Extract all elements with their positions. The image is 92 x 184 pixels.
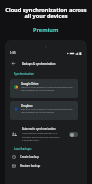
staticText: Local backups — [14, 147, 32, 151]
button[interactable]: Automatic synchronization — [10, 127, 78, 141]
staticText: Synchronization — [14, 72, 34, 76]
staticText: 1:35 — [10, 51, 16, 55]
button[interactable]: Dropbox — [10, 101, 78, 120]
staticText: Sign in to your account to start synchro… — [21, 86, 73, 92]
staticText: Backups & synchronization — [22, 62, 56, 66]
button[interactable]: Back — [10, 60, 17, 67]
staticText: Create backup — [20, 155, 39, 159]
staticText: Sign in to your account to start synchro… — [21, 108, 73, 114]
button[interactable]: Google Drive — [10, 79, 78, 98]
staticText: Restore backup — [20, 164, 41, 168]
staticText: Automatic synchronization — [22, 127, 56, 131]
button[interactable]: Restore backup — [10, 164, 78, 168]
staticText: Cloud synchronization across all your de… — [5, 6, 87, 20]
button[interactable]: Create backup — [10, 155, 78, 159]
staticText: Google Drive — [21, 82, 39, 86]
staticText: Premium — [33, 26, 59, 34]
staticText: Dropbox — [21, 104, 33, 108]
staticText: Automatically create backups on a schedu… — [22, 132, 60, 141]
